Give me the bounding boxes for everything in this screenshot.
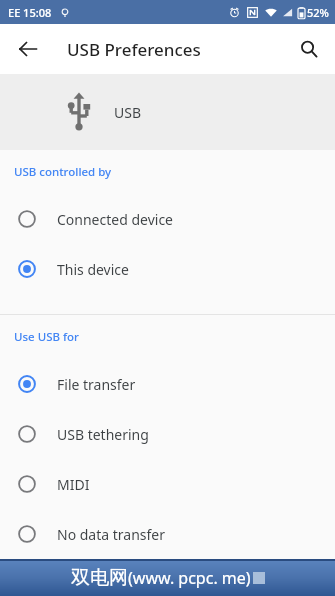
staticText: No data transfer [57, 525, 166, 544]
staticText: (www. pcpc. me) [128, 567, 251, 589]
button[interactable]: Search [289, 29, 329, 69]
staticText: MIDI [57, 475, 90, 494]
button[interactable]: USB tethering [0, 409, 335, 459]
button[interactable]: File transfer [0, 359, 335, 409]
button[interactable]: MIDI [0, 459, 335, 509]
staticText: USB [114, 103, 142, 122]
staticText: This device [57, 260, 129, 279]
button[interactable]: No data transfer [0, 509, 335, 559]
staticText: Connected device [57, 210, 174, 229]
staticText: USB controlled by [14, 164, 112, 180]
staticText: EE 15:08 [8, 5, 52, 20]
button[interactable]: Back [8, 29, 48, 69]
staticText: USB Preferences [67, 38, 201, 61]
staticText: 52% [307, 5, 329, 20]
staticText: File transfer [57, 375, 136, 394]
button[interactable]: This device [0, 244, 335, 294]
staticText: Use USB for [14, 329, 79, 345]
button[interactable]: Connected device [0, 194, 335, 244]
staticText: USB tethering [57, 425, 149, 444]
staticText: 双电网 [71, 566, 128, 590]
